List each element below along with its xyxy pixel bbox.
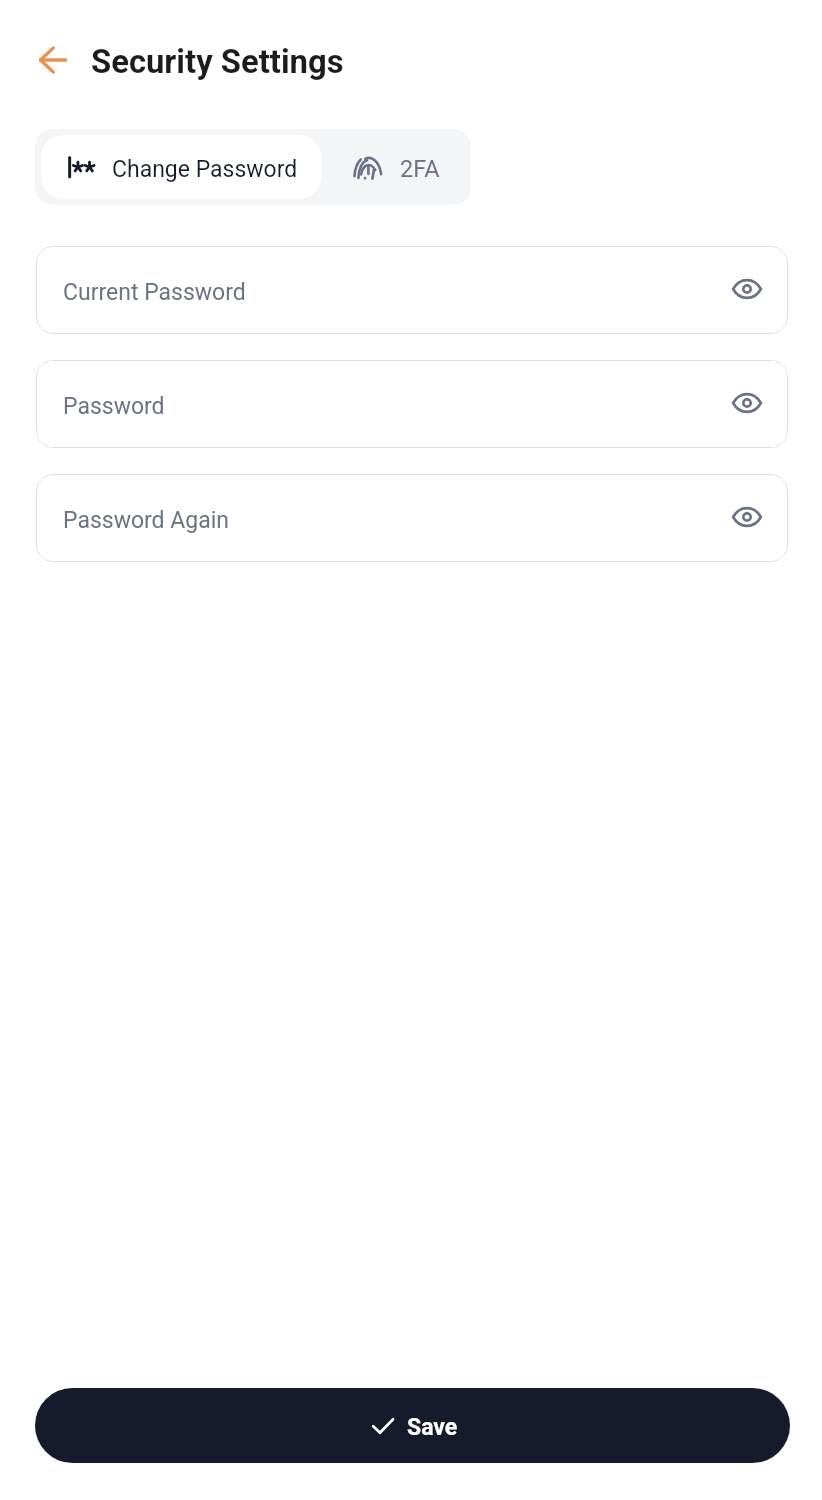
staticText: Current Password [63, 279, 246, 306]
button[interactable]: 2FA [321, 135, 471, 199]
staticText: 2FA [400, 155, 440, 183]
button[interactable]: Show password [724, 270, 764, 310]
staticText: Password [63, 393, 165, 420]
button[interactable]: Password Again [36, 474, 788, 562]
staticText: Save [407, 1414, 458, 1441]
staticText: Password Again [63, 507, 230, 534]
button[interactable]: Password [36, 360, 788, 448]
button[interactable]: Current Password [36, 246, 788, 334]
staticText: Security Settings [91, 43, 344, 81]
button[interactable]: Show password [724, 498, 764, 538]
staticText: Change Password [112, 156, 298, 183]
button[interactable]: Show password [724, 384, 764, 424]
button[interactable]: Change Password [41, 135, 321, 199]
button[interactable]: Back [33, 43, 73, 83]
button[interactable]: Save [35, 1388, 790, 1463]
